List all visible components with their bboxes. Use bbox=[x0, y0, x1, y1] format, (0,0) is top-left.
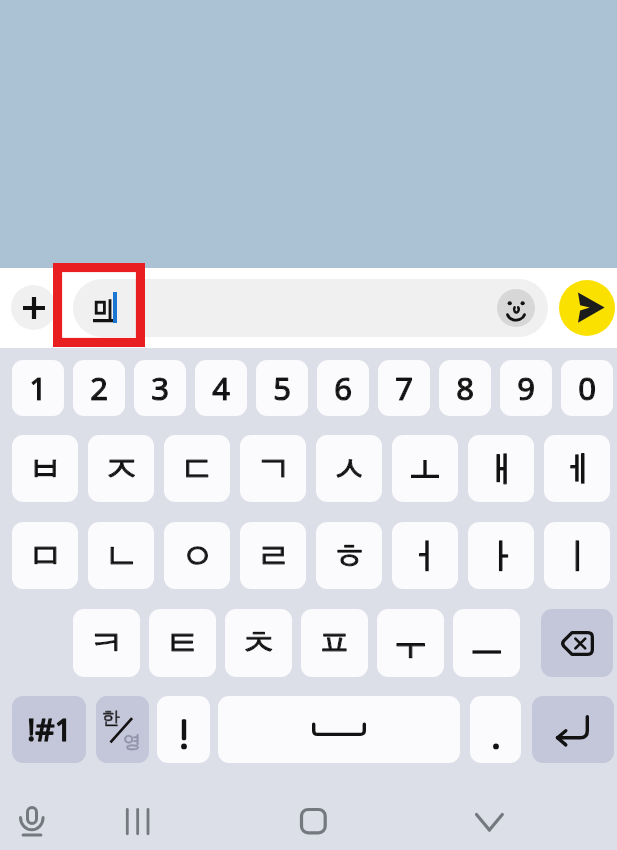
staticText: ㄷ bbox=[180, 447, 215, 491]
button[interactable]: ㄴ bbox=[88, 522, 154, 589]
staticText: 9 bbox=[517, 367, 535, 409]
staticText: 7 bbox=[395, 367, 413, 409]
button[interactable]: ㅂ bbox=[12, 435, 78, 502]
button[interactable]: 9 bbox=[500, 360, 552, 416]
button[interactable]: ㅎ bbox=[316, 522, 382, 589]
staticText: ㅌ bbox=[165, 621, 200, 665]
staticText: ㅈ bbox=[104, 447, 139, 491]
button[interactable]: !#1 bbox=[12, 696, 86, 763]
staticText: ㅂ bbox=[28, 447, 63, 491]
button[interactable]: 8 bbox=[439, 360, 491, 416]
staticText: 영 bbox=[123, 731, 141, 753]
button[interactable]: ㅅ bbox=[316, 435, 382, 502]
button[interactable]: ㄱ bbox=[240, 435, 306, 502]
staticText: ㄹ bbox=[256, 534, 291, 578]
staticText: ㅌ bbox=[165, 621, 200, 665]
staticText: ㅜ bbox=[393, 621, 428, 665]
button[interactable]: Home bbox=[290, 800, 334, 844]
staticText: 3 bbox=[151, 367, 169, 409]
staticText: 4 bbox=[212, 367, 230, 409]
staticText: ㅋ bbox=[89, 621, 124, 665]
button[interactable]: Backspace bbox=[541, 609, 613, 677]
button[interactable]: ㅊ bbox=[225, 609, 292, 677]
button[interactable]: Language toggle bbox=[96, 696, 149, 763]
button[interactable]: ㅌ bbox=[149, 609, 216, 677]
staticText: 0 bbox=[578, 367, 596, 409]
staticText: ㄷ bbox=[180, 447, 215, 491]
button[interactable]: ㅓ bbox=[392, 522, 458, 589]
staticText: ㄴ bbox=[104, 534, 139, 578]
button[interactable]: 1 bbox=[12, 360, 64, 416]
staticText: ㅓ bbox=[408, 534, 443, 578]
staticText: ㅐ bbox=[484, 447, 519, 491]
button[interactable]: ㅔ bbox=[544, 435, 610, 502]
button[interactable]: 5 bbox=[256, 360, 308, 416]
staticText: ㅣ bbox=[560, 534, 595, 578]
staticText: 한 bbox=[102, 707, 120, 729]
staticText: ㄴ bbox=[104, 534, 139, 578]
staticText: ㅅ bbox=[332, 447, 367, 491]
button[interactable]: Hide keyboard bbox=[468, 800, 512, 844]
button[interactable]: ㅜ bbox=[377, 609, 444, 677]
staticText: 6 bbox=[334, 367, 352, 409]
staticText: ㅓ bbox=[408, 534, 443, 578]
staticText: 8 bbox=[456, 367, 474, 409]
staticText: !#1 bbox=[27, 709, 72, 750]
staticText: ㄹ bbox=[256, 534, 291, 578]
staticText: 1 bbox=[29, 367, 47, 409]
staticText: ㅍ bbox=[317, 621, 352, 665]
button[interactable]: 7 bbox=[378, 360, 430, 416]
staticText: ㅏ bbox=[484, 534, 519, 578]
button[interactable] bbox=[470, 696, 521, 763]
staticText: ㅊ bbox=[241, 621, 276, 665]
staticText: ㅣ bbox=[560, 534, 595, 578]
button[interactable]: ㅍ bbox=[301, 609, 368, 677]
staticText: 2 bbox=[90, 367, 108, 409]
button[interactable]: ㅏ bbox=[468, 522, 534, 589]
staticText: ㅇ bbox=[180, 534, 215, 578]
staticText: ㅁ bbox=[28, 534, 63, 578]
button[interactable]: 3 bbox=[134, 360, 186, 416]
button[interactable]: 0 bbox=[561, 360, 613, 416]
staticText: ㅋ bbox=[89, 621, 124, 665]
staticText: 0 bbox=[578, 367, 596, 409]
staticText: 8 bbox=[456, 367, 474, 409]
staticText: ㅎ bbox=[332, 534, 367, 578]
staticText: ㅍ bbox=[317, 621, 352, 665]
button[interactable]: ㅋ bbox=[73, 609, 140, 677]
button[interactable]: ㅣ bbox=[544, 522, 610, 589]
staticText: 4 bbox=[212, 367, 230, 409]
button[interactable]: 4 bbox=[195, 360, 247, 416]
button[interactable]: ㄹ bbox=[240, 522, 306, 589]
button[interactable]: ㅇ bbox=[164, 522, 230, 589]
staticText: 5 bbox=[273, 367, 291, 409]
button[interactable]: Send bbox=[559, 280, 615, 336]
staticText: 한 bbox=[102, 707, 120, 729]
staticText: ㅜ bbox=[393, 621, 428, 665]
staticText: ㅡ bbox=[469, 621, 504, 665]
staticText: ㅈ bbox=[104, 447, 139, 491]
staticText: 영 bbox=[123, 731, 141, 753]
staticText: ㅎ bbox=[332, 534, 367, 578]
button[interactable]: Add attachment bbox=[11, 285, 56, 330]
button[interactable]: Emoji bbox=[497, 289, 535, 327]
staticText: ㅇ bbox=[180, 534, 215, 578]
button[interactable]: Voice input bbox=[10, 800, 54, 844]
staticText: ㅁ bbox=[28, 534, 63, 578]
button[interactable]: Space bbox=[218, 696, 460, 763]
button[interactable]: 6 bbox=[317, 360, 369, 416]
button[interactable] bbox=[157, 696, 210, 763]
button[interactable]: ㅁ bbox=[12, 522, 78, 589]
button[interactable]: Emoji bbox=[73, 279, 548, 337]
button[interactable]: 2 bbox=[73, 360, 125, 416]
button[interactable]: Enter bbox=[532, 696, 614, 763]
staticText: 6 bbox=[334, 367, 352, 409]
button[interactable]: Recents bbox=[116, 800, 160, 844]
staticText: ㅊ bbox=[241, 621, 276, 665]
button[interactable] bbox=[392, 435, 458, 502]
button[interactable]: ㅐ bbox=[468, 435, 534, 502]
button[interactable]: ㅡ bbox=[453, 609, 520, 677]
button[interactable]: ㄷ bbox=[164, 435, 230, 502]
staticText: 1 bbox=[29, 367, 47, 409]
button[interactable]: ㅈ bbox=[88, 435, 154, 502]
